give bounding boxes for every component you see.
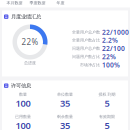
staticText: 5 — [104, 97, 109, 109]
staticText: 单位数量 — [57, 92, 73, 97]
staticText: 22% — [102, 52, 116, 61]
staticText: 年度 — [56, 0, 64, 5]
button[interactable]: 季度数据 — [26, 0, 49, 7]
staticText: 数量 — [19, 92, 27, 97]
staticText: 35 — [60, 119, 70, 130]
button[interactable]: 年度 — [49, 0, 72, 7]
staticText: 问题用户总户数 — [72, 46, 100, 51]
staticText: 季度数据 — [29, 0, 45, 5]
staticText: 已用数量 — [15, 114, 31, 119]
staticText: 22/1000 — [102, 28, 129, 36]
staticText: 22% — [21, 37, 38, 47]
staticText: 100 — [15, 119, 30, 130]
staticText: 2.2% — [102, 36, 118, 45]
staticText: 总进度 — [24, 60, 36, 65]
staticText: 22/100 — [102, 44, 125, 53]
staticText: 有效期限 — [99, 114, 115, 119]
staticText: 月度业绩汇总 — [11, 13, 41, 20]
staticText: 许可信息 — [11, 82, 31, 89]
staticText: 35 — [60, 97, 70, 109]
staticText: 市场净占比 — [80, 62, 100, 67]
staticText: 剩余数量 — [57, 114, 73, 119]
staticText: 全量用户总户数 — [72, 30, 100, 34]
button[interactable]: 本月数据 — [3, 0, 26, 7]
staticText: 100% — [102, 60, 120, 69]
staticText: 5 — [104, 119, 109, 130]
staticText: 100 — [15, 97, 30, 109]
staticText: 全量用户数占比 — [72, 38, 100, 43]
staticText: 问题用户数占比 — [72, 54, 100, 59]
staticText: 本月数据 — [6, 0, 22, 5]
staticText: 授权 到期 — [98, 92, 115, 97]
